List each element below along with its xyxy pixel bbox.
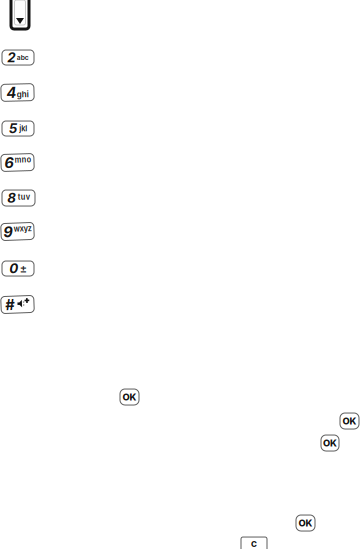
staticText: OK [122,391,136,403]
staticText: wxyz [14,225,32,233]
staticText: 8 [7,190,16,206]
staticText: ghi [17,90,29,99]
staticText: 0 [9,260,18,276]
button[interactable]: 6 [1,154,34,171]
button[interactable]: 0 [2,261,34,276]
staticText: OK [298,517,312,529]
button[interactable]: OK [340,413,359,429]
staticText: OK [342,415,356,427]
button[interactable]: 4 [1,84,34,101]
button[interactable]: C [241,537,267,549]
staticText: OK [323,437,337,449]
staticText: 9 [3,223,13,240]
button[interactable]: 5 [2,121,34,136]
staticText: tuv [18,193,30,201]
staticText: # [5,296,15,313]
button[interactable]: 2 [2,50,34,65]
button[interactable]: Number sign, ringer volume [1,296,34,313]
staticText: 6 [4,154,14,171]
button[interactable]: OK [120,389,139,405]
staticText: 4 [6,84,16,101]
staticText: 2 [7,49,15,65]
staticText: ± [20,262,27,275]
button[interactable]: Scroll down [11,0,29,29]
staticText: mno [15,156,31,164]
button[interactable]: 8 [2,190,35,206]
staticText: 5 [9,120,18,136]
button[interactable]: OK [296,515,315,531]
staticText: C [251,539,257,549]
staticText: jkl [19,124,27,133]
staticText: abc [17,53,29,62]
button[interactable]: 9 [1,223,34,240]
button[interactable]: OK [321,435,339,451]
